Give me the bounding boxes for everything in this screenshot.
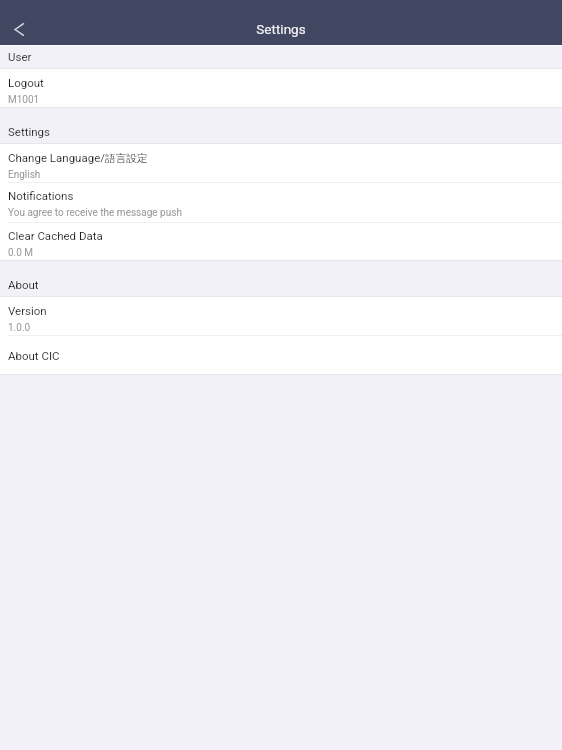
staticText: M1001 (8, 94, 40, 106)
staticText: Notifications (8, 189, 74, 202)
button[interactable]: Back (0, 14, 36, 45)
staticText: Change Language/語言設定 (8, 151, 148, 165)
button[interactable]: Logout (0, 69, 562, 107)
staticText: Version (8, 304, 47, 317)
button[interactable]: Clear Cached Data (0, 222, 562, 260)
staticText: User (8, 50, 32, 63)
button[interactable]: About CIC (0, 335, 562, 374)
staticText: About (8, 278, 39, 291)
button[interactable]: Notifications (0, 182, 562, 222)
staticText: Settings (256, 21, 306, 37)
staticText: 1.0.0 (8, 322, 31, 334)
staticText: About CIC (8, 349, 60, 362)
staticText: 0.0 M (8, 247, 34, 259)
staticText: Clear Cached Data (8, 229, 103, 242)
button[interactable]: Change Language/語言設定 (0, 144, 562, 182)
button[interactable]: Version (0, 297, 562, 335)
staticText: Settings (8, 125, 50, 138)
staticText: English (8, 169, 41, 181)
staticText: Logout (8, 76, 44, 89)
staticText: You agree to receive the message push (8, 207, 182, 219)
